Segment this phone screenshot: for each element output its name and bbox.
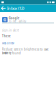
staticText: G [3, 17, 6, 22]
staticText: was a new [2, 41, 14, 45]
button[interactable]: Back [0, 5, 7, 12]
staticText: There [2, 34, 11, 38]
staticText: to me, ashley [9, 20, 26, 23]
staticText: sign-in alert [2, 29, 19, 32]
staticText: Reduce screen brightness to save battery [2, 48, 49, 55]
staticText: Google [9, 16, 20, 20]
button[interactable]: was a new [2, 41, 14, 45]
staticText: smart it found [2, 51, 21, 55]
staticText: Inbox (12) [7, 6, 24, 11]
